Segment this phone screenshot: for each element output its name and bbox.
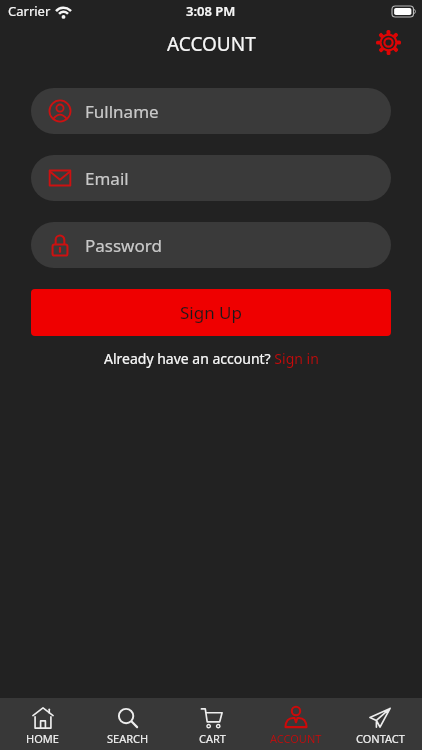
button[interactable]: Already have an account? Sign in <box>0 349 422 368</box>
staticText: Password <box>85 234 162 257</box>
staticText: SEARCH <box>107 731 149 746</box>
button[interactable]: Fullname <box>31 88 391 134</box>
staticText: ACCOUNT <box>270 731 322 746</box>
button[interactable] <box>372 26 404 58</box>
staticText: CONTACT <box>356 731 405 746</box>
button[interactable]: Email <box>31 155 391 201</box>
staticText: Sign Up <box>180 301 242 324</box>
button[interactable]: SEARCH <box>85 698 170 750</box>
button[interactable]: HOME <box>0 698 85 750</box>
staticText: Carrier <box>8 2 51 20</box>
button[interactable]: CONTACT <box>338 698 422 750</box>
staticText: Already have an account? Sign in <box>104 349 319 368</box>
button[interactable]: CART <box>170 698 254 750</box>
button[interactable]: ACCOUNT <box>254 698 338 750</box>
staticText: CART <box>199 731 226 746</box>
staticText: ACCOUNT <box>167 31 256 57</box>
staticText: HOME <box>26 731 59 746</box>
button[interactable]: Sign Up <box>31 289 391 336</box>
button[interactable]: Password <box>31 222 391 268</box>
staticText: Fullname <box>85 100 159 123</box>
staticText: 3:08 PM <box>186 2 236 20</box>
staticText: Email <box>85 167 129 190</box>
